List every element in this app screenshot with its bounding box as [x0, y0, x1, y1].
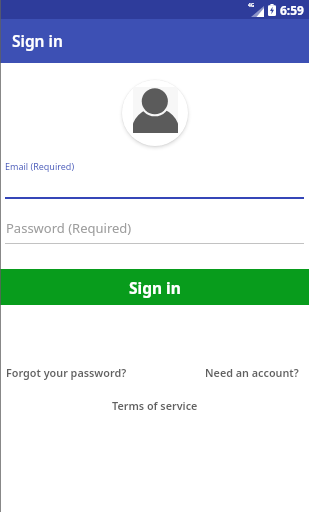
staticText: 6:59 [280, 2, 304, 18]
button[interactable]: Forgot your password? [6, 365, 127, 380]
button[interactable]: Need an account? [205, 365, 299, 380]
button[interactable]: Terms of service [112, 398, 198, 413]
button[interactable]: Sign in [0, 269, 309, 305]
staticText: Email (Required) [5, 160, 75, 172]
staticText: 4G [248, 2, 255, 9]
staticText: Password (Required) [6, 219, 132, 237]
staticText: Sign in [12, 30, 63, 51]
staticText: Sign in [129, 277, 181, 298]
